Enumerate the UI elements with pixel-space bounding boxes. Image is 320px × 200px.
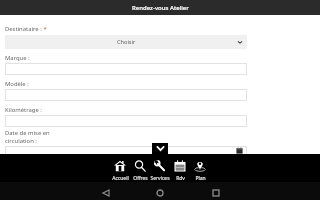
button[interactable]: Home [153,186,167,200]
button[interactable] [5,146,247,160]
button[interactable] [5,115,247,127]
button[interactable]: Services [150,154,170,182]
staticText: Plan [195,175,206,182]
staticText: Offres [133,175,148,182]
button[interactable]: Offres [130,154,150,182]
button[interactable]: Rdv [170,154,190,182]
staticText: Date de mise en circulation : [5,129,50,145]
button[interactable] [5,63,247,75]
staticText: Modèle : [5,80,29,88]
staticText: Kilométrage : [5,106,42,114]
button[interactable] [5,89,247,101]
staticText: Marque : [5,54,30,62]
button[interactable]: Back [99,186,113,200]
button[interactable]: Accueil [110,154,130,182]
staticText: Rdv [176,175,185,182]
staticText: Accueil [112,175,129,182]
staticText: Choisir [117,38,136,46]
staticText: Destinataire : [5,25,42,33]
staticText: Services [150,175,170,182]
staticText: Rendez-vous Atelier [132,4,189,12]
staticText: * [42,25,47,33]
button[interactable]: Choisir [5,35,247,49]
button[interactable]: Choisir une date [235,146,244,155]
button[interactable]: Rendez-vous Atelier [0,0,320,15]
button[interactable]: Masquer le menu [152,143,168,154]
button[interactable]: Plan [190,154,210,182]
button[interactable]: Recents [209,186,223,200]
